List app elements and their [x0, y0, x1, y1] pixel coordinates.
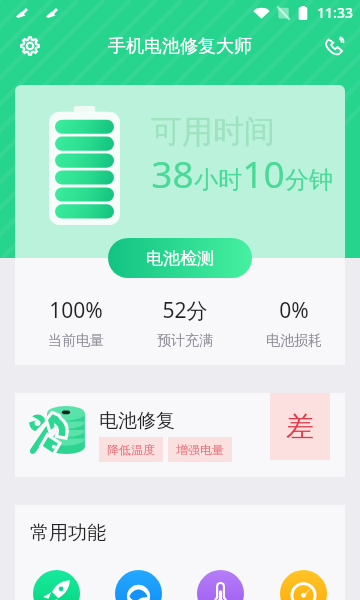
staticText: 小时 — [194, 165, 242, 195]
button[interactable]: Settings — [8, 24, 52, 68]
button[interactable]: 电池检测 — [108, 238, 252, 278]
staticText: 电池损耗 — [266, 332, 322, 350]
staticText: 差 — [286, 409, 314, 444]
staticText: 38 — [151, 148, 194, 198]
button[interactable]: Cool down — [197, 570, 244, 600]
staticText: 增强电量 — [176, 442, 224, 457]
staticText: 电池检测 — [146, 248, 214, 269]
staticText: 0% — [279, 296, 309, 325]
staticText: 10 — [242, 148, 285, 198]
staticText: 当前电量 — [48, 332, 104, 350]
staticText: 可用时间 — [151, 112, 275, 151]
staticText: 52分 — [162, 296, 208, 325]
staticText: 手机电池修复大师 — [108, 35, 252, 58]
staticText: 预计充满 — [157, 332, 213, 350]
staticText: 常用功能 — [30, 521, 106, 545]
button[interactable]: Clean — [115, 570, 162, 600]
button[interactable]: Speed test — [280, 570, 327, 600]
staticText: 100% — [49, 296, 103, 325]
staticText: 电池修复 — [99, 409, 175, 433]
button[interactable]: 电池修复 — [15, 393, 345, 477]
button[interactable]: Call support — [312, 24, 356, 68]
button[interactable]: Accelerate — [33, 570, 80, 600]
staticText: 11:33 — [317, 3, 353, 22]
staticText: 分钟 — [285, 165, 333, 195]
staticText: 降低温度 — [107, 442, 155, 457]
